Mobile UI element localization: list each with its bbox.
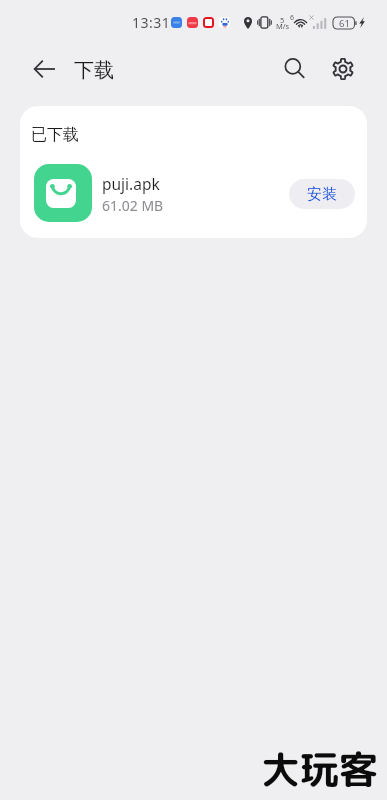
- button[interactable]: 安装: [289, 179, 355, 209]
- staticText: 61: [339, 17, 350, 29]
- staticText: 安装: [307, 185, 337, 204]
- staticText: M/s: [276, 21, 290, 31]
- button[interactable]: Settings: [327, 53, 359, 85]
- staticText: 13:31: [132, 13, 171, 32]
- staticText: 下载: [74, 58, 114, 83]
- staticText: 已下载: [31, 125, 79, 145]
- button[interactable]: Search: [278, 52, 310, 84]
- button[interactable]: Back: [28, 53, 60, 85]
- staticText: 大玩客: [261, 742, 379, 796]
- staticText: 61.02 MB: [102, 196, 164, 215]
- staticText: 5: [280, 15, 285, 25]
- staticText: 6: [290, 13, 295, 23]
- staticText: puji.apk: [102, 173, 160, 194]
